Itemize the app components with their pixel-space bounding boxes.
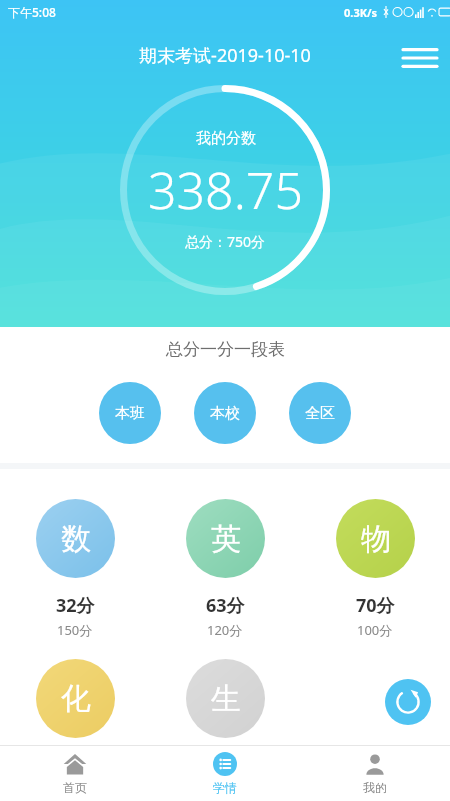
staticText: 化 <box>61 680 91 718</box>
button[interactable]: 本校 <box>194 382 256 444</box>
button[interactable]: 本班 <box>99 382 161 444</box>
button[interactable]: 我的 <box>300 746 450 801</box>
button[interactable]: 英 <box>150 499 300 639</box>
button[interactable]: 刷新 <box>385 679 431 725</box>
button[interactable]: 生 <box>150 659 300 738</box>
staticText: 全区 <box>305 404 335 423</box>
staticText: 学情 <box>213 780 237 795</box>
staticText: 32分 <box>56 593 95 618</box>
staticText: 338.75 <box>148 156 303 224</box>
button[interactable]: 全区 <box>289 382 351 444</box>
staticText: 我的 <box>363 780 387 795</box>
staticText: 63分 <box>206 593 245 618</box>
staticText: 下午5:08 <box>8 4 56 20</box>
button[interactable]: 数 <box>0 499 150 639</box>
button[interactable]: 学情 <box>150 746 300 801</box>
staticText: 100分 <box>357 621 393 639</box>
staticText: 我的分数 <box>196 129 256 148</box>
staticText: 150分 <box>57 621 93 639</box>
button[interactable]: 菜单 <box>398 36 442 80</box>
staticText: 本班 <box>115 404 145 423</box>
staticText: 物 <box>361 520 391 558</box>
staticText: 总分：750分 <box>185 232 266 251</box>
staticText: 英 <box>211 520 241 558</box>
staticText: 本校 <box>210 404 240 423</box>
staticText: 数 <box>61 520 91 558</box>
staticText: 0.3K/s <box>344 5 378 20</box>
staticText: 期末考试-2019-10-10 <box>0 43 450 68</box>
staticText: 70分 <box>356 593 395 618</box>
staticText: 120分 <box>207 621 243 639</box>
button[interactable]: 首页 <box>0 746 150 801</box>
staticText: 总分一分一段表 <box>166 339 285 360</box>
button[interactable]: 物 <box>300 499 450 639</box>
staticText: 生 <box>211 680 241 718</box>
staticText: 首页 <box>63 780 87 795</box>
button[interactable]: 化 <box>0 659 150 738</box>
